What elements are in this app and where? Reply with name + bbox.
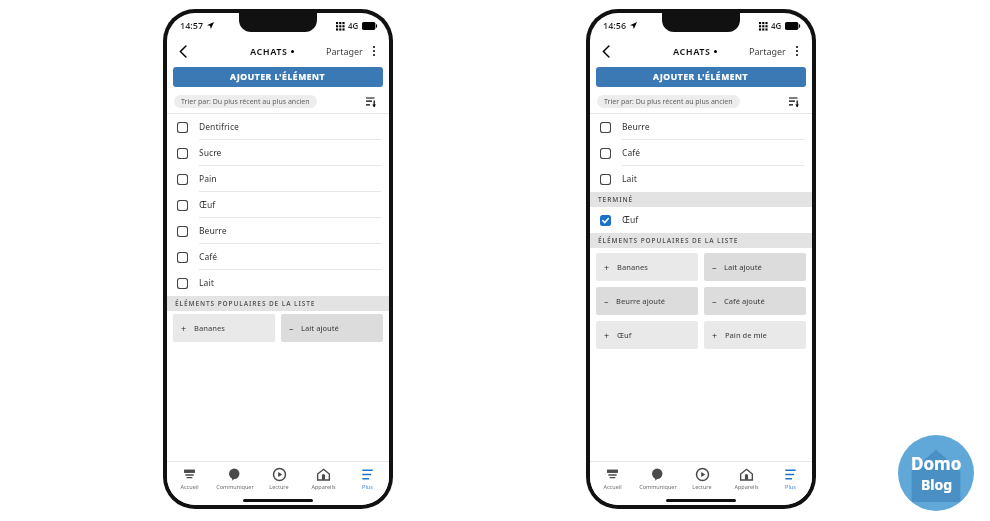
button[interactable]: More options [788, 42, 806, 60]
staticText: 14:57 [180, 19, 204, 31]
staticText: 14:56 [603, 19, 627, 31]
staticText: Beurre ajouté [616, 296, 666, 306]
button[interactable]: Œuf [167, 192, 389, 218]
button[interactable]: Accueil [167, 462, 212, 495]
button[interactable]: Sort [786, 94, 802, 110]
staticText: + [181, 322, 187, 334]
button[interactable]: Café [590, 140, 812, 166]
button[interactable]: Plus [768, 462, 812, 495]
button[interactable]: Communiquer [635, 462, 680, 495]
staticText: Œuf [199, 199, 216, 211]
staticText: Œuf [617, 330, 632, 340]
button[interactable]: – [596, 287, 698, 315]
staticText: Domo [911, 452, 962, 475]
staticText: Café ajouté [724, 296, 765, 306]
button[interactable]: Beurre [590, 114, 812, 140]
staticText: Accueil [603, 483, 622, 490]
staticText: AJOUTER L'ÉLÉMENT [230, 71, 326, 83]
button[interactable]: AJOUTER L'ÉLÉMENT [173, 67, 383, 87]
button[interactable]: Partager [749, 45, 786, 57]
staticText: Beurre [199, 225, 227, 237]
staticText: – [712, 295, 717, 307]
staticText: Trier par: Du plus récent au plus ancien [181, 97, 310, 107]
staticText: ÉLÉMENTS POPULAIRES DE LA LISTE [598, 236, 739, 245]
staticText: TERMINÉ [598, 195, 634, 204]
staticText: Bananes [194, 323, 225, 333]
button[interactable]: Beurre [167, 218, 389, 244]
button[interactable]: Sucre [167, 140, 389, 166]
button[interactable]: Trier par: Du plus récent au plus ancien [181, 95, 310, 108]
button[interactable]: – [704, 287, 806, 315]
staticText: – [604, 295, 609, 307]
staticText: Lait ajouté [724, 262, 762, 272]
staticText: Appareils [311, 483, 336, 490]
staticText: Plus [362, 483, 373, 490]
staticText: Lecture [692, 483, 712, 490]
staticText: Lait [199, 277, 214, 289]
staticText: + [604, 329, 610, 341]
staticText: Lecture [269, 483, 289, 490]
staticText: Dentifrice [199, 121, 239, 133]
button[interactable]: + [173, 314, 275, 342]
staticText: Œuf [622, 214, 639, 226]
staticText: Accueil [180, 483, 199, 490]
staticText: Pain [199, 173, 217, 185]
button[interactable]: AJOUTER L'ÉLÉMENT [596, 67, 806, 87]
button[interactable]: – [281, 314, 383, 342]
button[interactable]: More options [365, 42, 383, 60]
staticText: ÉLÉMENTS POPULAIRES DE LA LISTE [175, 299, 316, 308]
staticText: Lait [622, 173, 637, 185]
button[interactable]: Partager [326, 45, 363, 57]
staticText: ACHATS [250, 45, 288, 57]
staticText: AJOUTER L'ÉLÉMENT [653, 71, 749, 83]
staticText: Blog [921, 475, 953, 494]
button[interactable]: Pain [167, 166, 389, 192]
staticText: 4G [348, 20, 359, 31]
button[interactable]: – [704, 253, 806, 281]
button[interactable]: Accueil [590, 462, 635, 495]
staticText: Sucre [199, 147, 222, 159]
staticText: Appareils [734, 483, 759, 490]
staticText: + [604, 261, 610, 273]
staticText: Beurre [622, 121, 650, 133]
button[interactable]: Trier par: Du plus récent au plus ancien [604, 95, 733, 108]
button[interactable]: Back [596, 41, 616, 61]
staticText: Communiquer [639, 483, 677, 490]
button[interactable]: Plus [345, 462, 389, 495]
staticText: ACHATS [673, 45, 711, 57]
button[interactable]: Œuf [590, 207, 812, 233]
staticText: + [712, 329, 718, 341]
button[interactable]: Sort [363, 94, 379, 110]
staticText: Pain de mie [725, 330, 767, 340]
button[interactable]: + [596, 321, 698, 349]
staticText: – [289, 322, 294, 334]
button[interactable]: Appareils [301, 462, 345, 495]
button[interactable]: Lecture [257, 462, 301, 495]
button[interactable]: Lait [167, 270, 389, 296]
button[interactable]: Dentifrice [167, 114, 389, 140]
staticText: Café [199, 251, 218, 263]
staticText: Café [622, 147, 641, 159]
staticText: 4G [771, 20, 782, 31]
button[interactable]: + [596, 253, 698, 281]
button[interactable]: Lait [590, 166, 812, 192]
staticText: Bananes [617, 262, 648, 272]
button[interactable]: ACHATS [673, 45, 717, 57]
button[interactable]: Back [173, 41, 193, 61]
staticText: Lait ajouté [301, 323, 339, 333]
button[interactable]: ACHATS [250, 45, 294, 57]
staticText: – [712, 261, 717, 273]
staticText: Plus [785, 483, 796, 490]
button[interactable]: + [704, 321, 806, 349]
staticText: Trier par: Du plus récent au plus ancien [604, 97, 733, 107]
button[interactable]: Appareils [724, 462, 768, 495]
button[interactable]: Lecture [680, 462, 724, 495]
button[interactable]: Café [167, 244, 389, 270]
staticText: Communiquer [216, 483, 254, 490]
button[interactable]: Communiquer [212, 462, 257, 495]
